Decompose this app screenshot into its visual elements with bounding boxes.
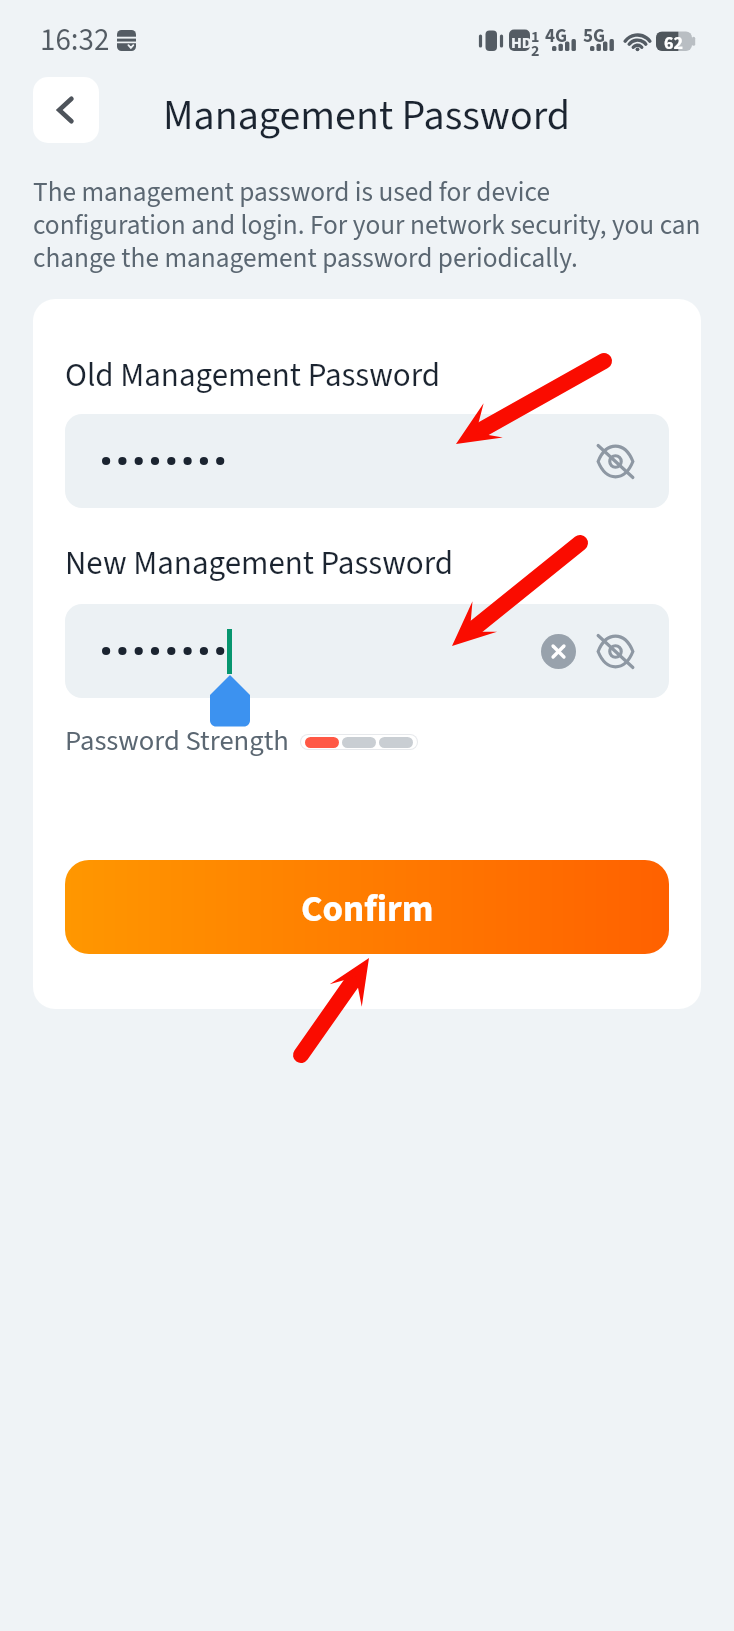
staticText: New Management Password — [65, 540, 454, 587]
staticText: The management password is used for devi… — [33, 173, 701, 278]
staticText: Confirm — [301, 883, 434, 936]
staticText: 1 — [531, 26, 540, 49]
button[interactable]: Clear text — [541, 634, 576, 669]
staticText: Password Strength — [65, 721, 289, 762]
button[interactable]: Clear text — [65, 604, 669, 698]
staticText: 62 — [664, 31, 684, 57]
staticText: 5G — [583, 23, 606, 50]
button[interactable]: Show password — [65, 414, 669, 508]
staticText: 4G — [545, 23, 568, 50]
staticText: Old Management Password — [65, 352, 441, 399]
staticText: Management Password — [163, 86, 571, 146]
button[interactable]: Confirm — [65, 860, 669, 954]
button[interactable]: Back — [33, 77, 99, 143]
staticText: 2 — [531, 40, 540, 63]
staticText: HD — [511, 32, 532, 55]
button[interactable]: Show password — [597, 633, 634, 670]
staticText: 16:32 — [40, 18, 110, 62]
button[interactable]: Show password — [597, 443, 634, 480]
